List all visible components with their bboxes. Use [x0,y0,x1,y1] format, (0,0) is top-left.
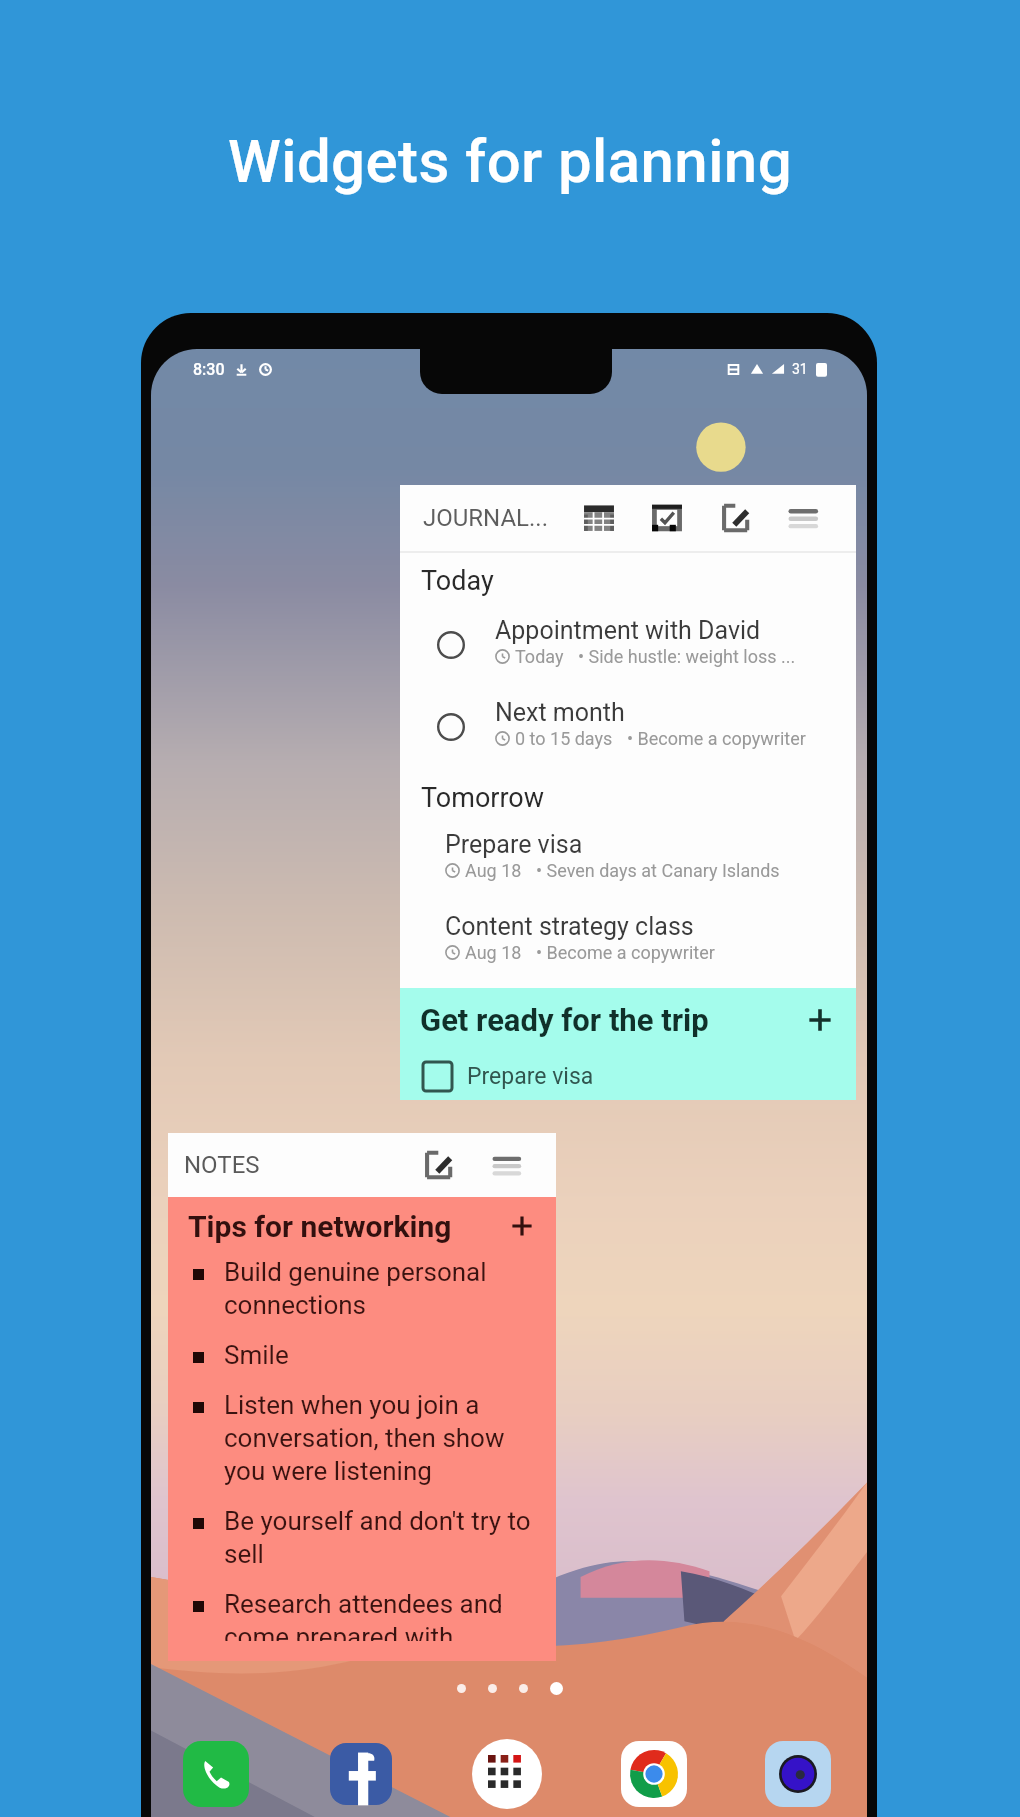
staticText: • Become a copywriter [536,942,715,963]
staticText: NOTES [184,1151,260,1179]
button[interactable]: Toggle Prepare visa [423,1062,452,1091]
button[interactable]: App [765,1741,831,1807]
button[interactable]: New entry [720,501,754,535]
staticText: Today [421,565,494,597]
staticText: JOURNAL... [423,504,549,532]
button[interactable]: New entry [423,1148,457,1182]
button[interactable]: Add task [806,1006,834,1034]
button[interactable]: All apps [472,1739,542,1809]
button[interactable]: Add note [510,1214,534,1238]
staticText: Today [515,646,564,667]
staticText: Prepare visa [467,1063,594,1090]
staticText: Prepare visa [445,830,583,859]
staticText: • Become a copywriter [627,728,806,749]
staticText: Research attendees and come prepared wit… [224,1589,542,1641]
button[interactable]: Calendar [582,501,616,535]
staticText: Smile [224,1340,289,1370]
staticText: 31 [792,361,808,377]
button[interactable]: Menu [492,1149,525,1182]
button[interactable]: Complete Appointment with David [435,629,467,661]
staticText: 8:30 [193,360,225,379]
button[interactable]: Phone [183,1741,249,1807]
staticText: Widgets for planning [228,126,793,196]
staticText: Be yourself and don't try to sell [224,1506,542,1569]
staticText: Appointment with David [495,616,761,645]
staticText: • Seven days at Canary Islands [536,860,780,881]
button[interactable]: Chrome [621,1741,687,1807]
staticText: Aug 18 [465,860,522,881]
staticText: Content strategy class [445,912,694,941]
staticText: Tips for networking [188,1209,452,1244]
staticText: • Side hustle: weight loss ... [578,646,796,667]
button[interactable]: Menu [788,501,822,535]
button[interactable]: Tasks [650,501,684,535]
staticText: 0 to 15 days [515,728,613,749]
staticText: Next month [495,698,625,727]
staticText: Get ready for the trip [420,1002,709,1038]
staticText: Aug 18 [465,942,522,963]
button[interactable]: Complete Next month [435,711,467,743]
button[interactable]: Facebook [328,1741,394,1807]
staticText: Listen when you join a conversation, the… [224,1390,542,1486]
staticText: Tomorrow [421,782,545,814]
staticText: Build genuine personal connections [224,1257,542,1320]
